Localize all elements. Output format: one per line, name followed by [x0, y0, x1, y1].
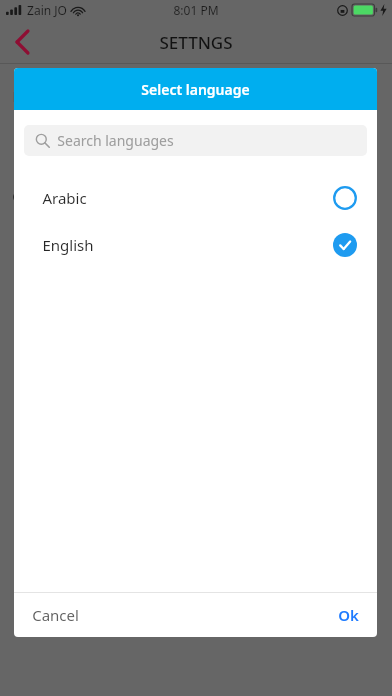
staticText: Select language — [141, 80, 250, 99]
button[interactable]: Search languages — [24, 125, 367, 156]
staticText: L — [12, 86, 21, 106]
staticText: C — [12, 186, 22, 206]
other: English selected — [333, 233, 357, 257]
button[interactable]: Ok — [320, 593, 377, 637]
button[interactable]: Cancel — [14, 593, 97, 637]
button[interactable]: English — [14, 221, 377, 268]
staticText: Arabic — [42, 188, 87, 208]
other: Arabic not selected — [333, 186, 357, 210]
button[interactable]: Arabic — [14, 174, 377, 221]
staticText: English — [42, 235, 94, 255]
staticText: Search languages — [57, 131, 174, 150]
button[interactable]: Back — [0, 20, 44, 64]
staticText: Cancel — [32, 605, 79, 625]
staticText: 8:01 PM — [173, 2, 219, 18]
staticText: Ok — [338, 605, 359, 625]
staticText: SETTNGS — [159, 31, 233, 54]
staticText: Zain JO — [27, 2, 67, 18]
